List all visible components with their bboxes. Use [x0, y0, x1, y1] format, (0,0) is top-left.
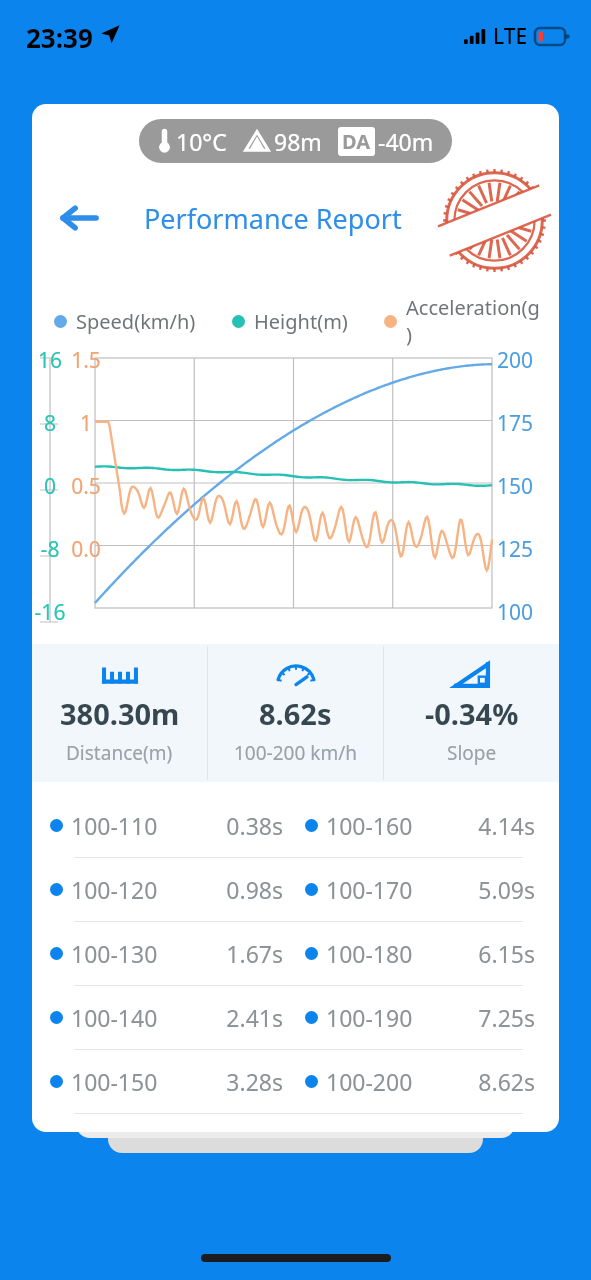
- staticText: 175: [497, 409, 534, 438]
- staticText: 380.30m: [60, 694, 180, 733]
- staticText: 8.62s: [259, 694, 332, 733]
- button[interactable]: 100-150: [32, 1050, 559, 1113]
- staticText: 2.41s: [191, 1002, 283, 1033]
- staticText: 0: [32, 472, 68, 501]
- staticText: 125: [497, 535, 534, 564]
- staticText: 1.67s: [191, 938, 283, 969]
- staticText: -0.34%: [425, 694, 519, 733]
- button[interactable]: 8.62s: [208, 644, 383, 782]
- staticText: Speed(km/h): [76, 308, 196, 335]
- button[interactable]: 100-110: [32, 794, 559, 857]
- staticText: 200: [497, 346, 534, 375]
- button[interactable]: 100-120: [32, 858, 559, 921]
- staticText: 0.0: [66, 535, 106, 564]
- staticText: 5.09s: [446, 874, 535, 905]
- staticText: -40m: [378, 126, 434, 157]
- staticText: Height(m): [254, 308, 348, 335]
- staticText: 0.98s: [191, 874, 283, 905]
- staticText: 100-140: [71, 1002, 191, 1033]
- staticText: 100-150: [71, 1066, 191, 1097]
- staticText: 100-200 km/h: [234, 740, 357, 766]
- staticText: Acceleration(g): [406, 294, 541, 348]
- staticText: 0.5: [66, 472, 106, 501]
- staticText: 100-130: [71, 938, 191, 969]
- staticText: -8: [32, 535, 68, 564]
- staticText: 3.28s: [191, 1066, 283, 1097]
- staticText: 100-180: [326, 938, 446, 969]
- staticText: 100-160: [326, 810, 446, 841]
- staticText: Slope: [447, 740, 497, 766]
- button[interactable]: -0.34%: [384, 644, 559, 782]
- staticText: 100-110: [71, 810, 191, 841]
- staticText: Performance Report: [144, 200, 402, 237]
- staticText: 1: [66, 409, 106, 438]
- staticText: DA: [342, 128, 371, 155]
- staticText: 10°C: [176, 126, 227, 157]
- staticText: 100-120: [71, 874, 191, 905]
- staticText: 150: [497, 472, 534, 501]
- staticText: 6.15s: [446, 938, 535, 969]
- staticText: -16: [32, 598, 68, 627]
- staticText: Distance(m): [66, 740, 173, 766]
- button[interactable]: 100-140: [32, 986, 559, 1049]
- staticText: 23:39: [26, 20, 93, 55]
- button[interactable]: 100-130: [32, 922, 559, 985]
- staticText: 98m: [274, 126, 322, 157]
- staticText: 16: [32, 346, 68, 375]
- staticText: 100: [497, 598, 534, 627]
- staticText: 7.25s: [446, 1002, 535, 1033]
- staticText: 8: [32, 409, 68, 438]
- staticText: LTE: [493, 22, 528, 51]
- staticText: 100-190: [326, 1002, 446, 1033]
- staticText: 100-170: [326, 874, 446, 905]
- button[interactable]: Back: [48, 187, 110, 249]
- staticText: 1.5: [66, 346, 106, 375]
- staticText: 8.62s: [446, 1066, 535, 1097]
- staticText: 0.38s: [191, 810, 283, 841]
- staticText: 4.14s: [446, 810, 535, 841]
- button[interactable]: 380.30m: [32, 644, 207, 782]
- staticText: 100-200: [326, 1066, 446, 1097]
